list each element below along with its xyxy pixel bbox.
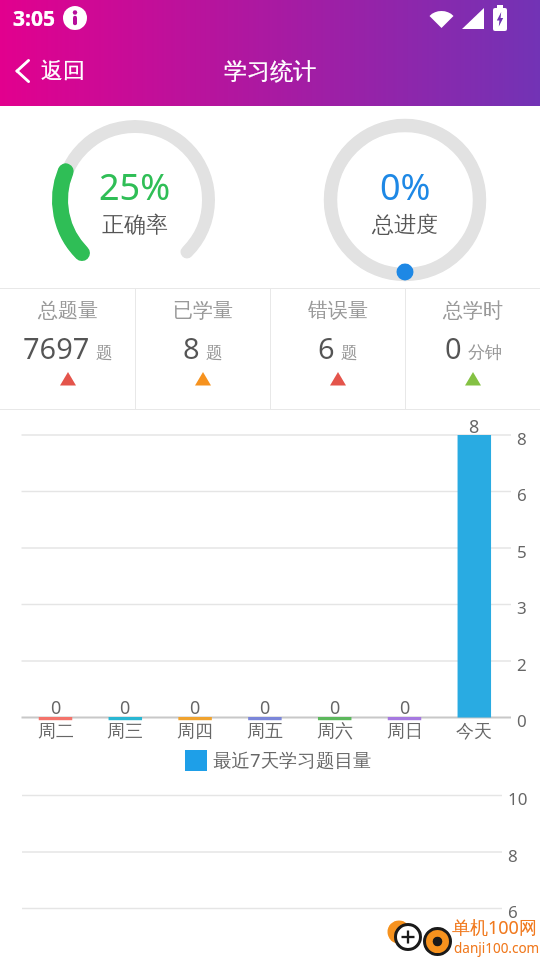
staticText: 7697 xyxy=(23,328,90,367)
staticText: 总学时 xyxy=(443,298,503,323)
staticText: 3 xyxy=(517,596,527,619)
staticText: 周日 xyxy=(387,720,423,743)
button[interactable]: 总题量 xyxy=(0,289,135,409)
staticText: 分钟 xyxy=(468,342,502,363)
staticText: 10 xyxy=(508,787,528,810)
staticText: 周六 xyxy=(317,720,353,743)
staticText: 单机100网 xyxy=(452,915,537,940)
staticText: 5 xyxy=(517,540,527,563)
staticText: 0 xyxy=(330,695,341,720)
staticText: 3:05 xyxy=(13,4,55,33)
staticText: 周三 xyxy=(107,720,143,743)
staticText: 错误量 xyxy=(308,298,368,323)
button[interactable]: 总学时 xyxy=(406,289,540,409)
staticText: 周五 xyxy=(247,720,283,743)
staticText: 总题量 xyxy=(38,298,98,323)
staticText: 0 xyxy=(517,709,527,732)
staticText: 8 xyxy=(517,427,527,450)
button[interactable]: 已学量 xyxy=(136,289,270,409)
staticText: 6 xyxy=(508,900,518,923)
staticText: 8 xyxy=(183,328,200,367)
staticText: 6 xyxy=(318,328,335,367)
staticText: 8 xyxy=(508,844,518,867)
staticText: 总进度 xyxy=(372,211,438,239)
staticText: 0 xyxy=(120,695,131,720)
staticText: 2 xyxy=(517,653,527,676)
staticText: 0 xyxy=(51,695,62,720)
staticText: 0 xyxy=(445,328,462,367)
staticText: 0 xyxy=(190,695,201,720)
staticText: 最近7天学习题目量 xyxy=(213,747,372,772)
staticText: 0 xyxy=(260,695,271,720)
staticText: 今天 xyxy=(456,720,492,743)
staticText: 已学量 xyxy=(173,298,233,323)
staticText: 6 xyxy=(517,483,527,506)
staticText: 周二 xyxy=(38,720,74,743)
staticText: 学习统计 xyxy=(224,57,316,86)
staticText: 题 xyxy=(96,342,113,363)
staticText: 周四 xyxy=(177,720,213,743)
staticText: 8 xyxy=(469,414,480,439)
button[interactable]: 返回 xyxy=(0,36,97,106)
staticText: 正确率 xyxy=(102,211,168,239)
staticText: 返回 xyxy=(41,57,85,85)
staticText: 25% xyxy=(99,162,171,211)
staticText: 0% xyxy=(380,162,431,211)
staticText: danji100.com xyxy=(454,939,540,957)
staticText: 题 xyxy=(341,342,358,363)
staticText: 0 xyxy=(400,695,411,720)
staticText: 题 xyxy=(206,342,223,363)
button[interactable]: 错误量 xyxy=(271,289,405,409)
